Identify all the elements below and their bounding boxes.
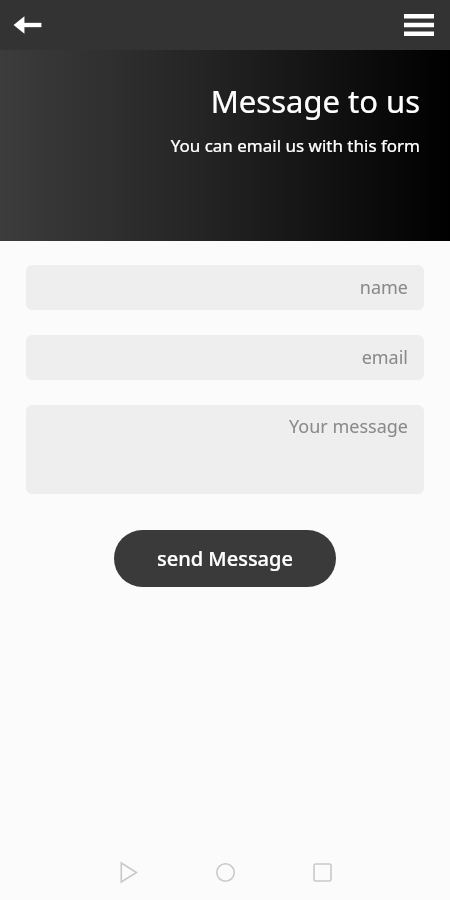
button[interactable]: send Message (114, 530, 336, 587)
button[interactable]: Menu (396, 2, 442, 48)
button[interactable]: email (26, 335, 424, 380)
button[interactable]: Recent apps (294, 844, 350, 900)
button[interactable]: Back (4, 2, 50, 48)
button[interactable]: name (26, 265, 424, 310)
staticText: email (361, 345, 408, 370)
staticText: Your message (289, 414, 408, 439)
button[interactable]: Home (197, 844, 253, 900)
staticText: name (359, 275, 408, 300)
staticText: send Message (157, 545, 293, 572)
button[interactable]: Your message (26, 405, 424, 494)
staticText: You can email us with this form (170, 134, 420, 157)
staticText: Message to us (210, 80, 420, 122)
button[interactable]: Back (100, 844, 156, 900)
